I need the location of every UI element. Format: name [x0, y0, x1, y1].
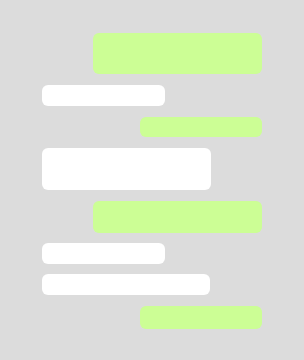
button[interactable]: Sent message placeholder — [93, 33, 262, 74]
button[interactable]: Sent message placeholder — [140, 117, 262, 137]
button[interactable]: Received message placeholder — [42, 85, 165, 106]
button[interactable]: Sent message placeholder — [140, 306, 262, 329]
button[interactable]: Received message placeholder — [42, 274, 210, 295]
button[interactable]: Sent message placeholder — [93, 201, 262, 233]
button[interactable]: Received message placeholder — [42, 243, 165, 264]
